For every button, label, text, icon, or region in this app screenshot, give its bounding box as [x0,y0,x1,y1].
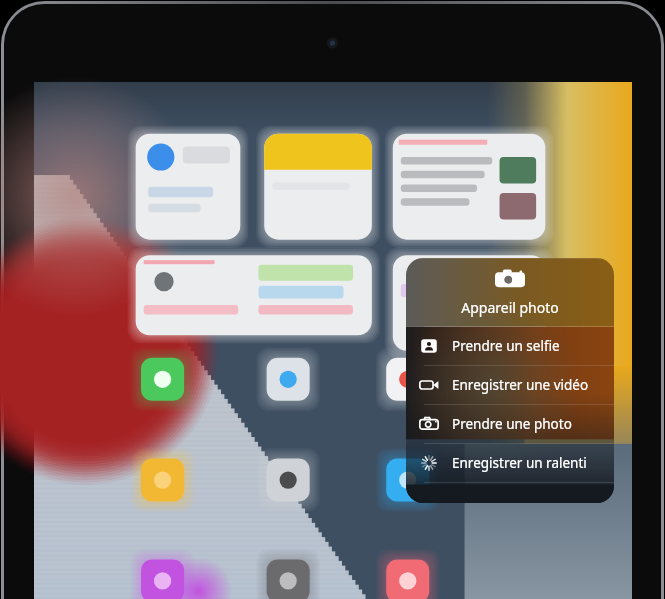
button[interactable]: Enregistrer une vidéo [406,366,614,404]
staticText: Prendre une photo [452,415,572,433]
staticText: Appareil photo [461,298,559,317]
button[interactable]: Appareil photo [406,258,614,326]
staticText: Enregistrer une vidéo [452,376,589,394]
button[interactable]: Prendre un selfie [406,327,614,365]
staticText: Prendre un selfie [452,337,560,355]
button[interactable]: Prendre une photo [406,405,614,443]
staticText: Enregistrer un ralenti [452,454,587,472]
button[interactable]: Enregistrer un ralenti [406,444,614,482]
